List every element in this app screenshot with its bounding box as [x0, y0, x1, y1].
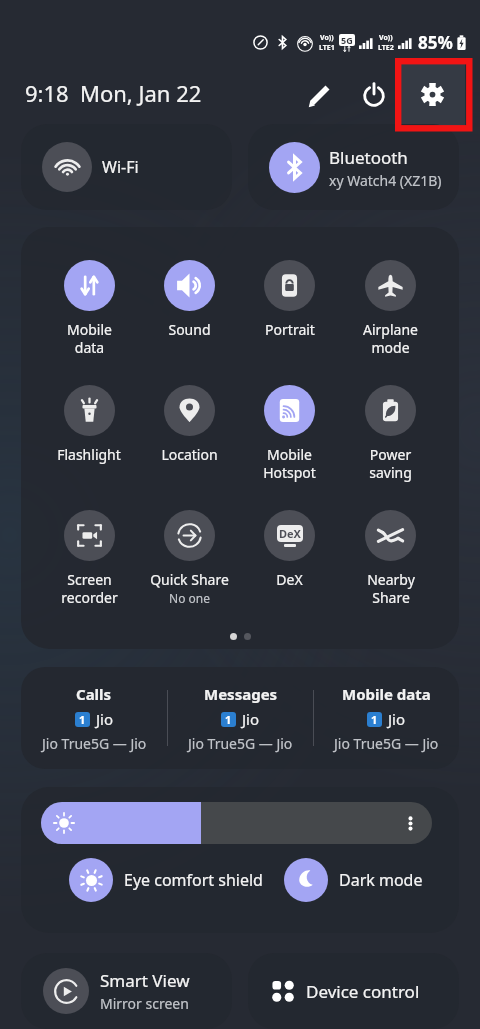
button[interactable]: Dark mode — [284, 850, 439, 910]
button[interactable]: DeX — [239, 510, 340, 589]
staticText: Wi-Fi — [102, 156, 139, 178]
staticText: Smart View — [100, 969, 190, 992]
staticText: 1 — [225, 712, 232, 727]
button[interactable]: Airplane mode — [340, 260, 441, 357]
staticText: 5G — [341, 34, 353, 46]
staticText: DeX — [279, 526, 301, 541]
staticText: Device control — [306, 980, 420, 1003]
staticText: Dark mode — [339, 869, 423, 891]
staticText: Airplane mode — [363, 320, 418, 357]
staticText: 85% — [418, 31, 453, 54]
staticText: Mon, Jan 22 — [80, 78, 202, 108]
staticText: 9:18 — [25, 78, 69, 108]
staticText: Quick Share — [150, 570, 229, 589]
staticText: Sound — [168, 320, 211, 339]
button[interactable]: Calls — [21, 667, 459, 769]
staticText: Power saving — [369, 445, 412, 482]
button[interactable]: Location — [139, 385, 239, 464]
button[interactable]: Power — [352, 73, 396, 117]
staticText: No one — [169, 590, 210, 606]
staticText: LTE2 — [378, 43, 394, 53]
staticText: Messages — [204, 684, 278, 704]
button[interactable]: Device control — [248, 953, 459, 1029]
staticText: Mobile Hotspot — [263, 445, 316, 482]
staticText: Location — [161, 445, 218, 464]
staticText: LTE1 — [319, 43, 335, 53]
staticText: Jio — [242, 709, 260, 729]
button[interactable]: Settings — [400, 62, 465, 127]
button[interactable]: Mobile Hotspot — [239, 385, 340, 482]
button[interactable]: Screen recorder — [39, 510, 139, 607]
button[interactable]: Flashlight — [39, 385, 139, 464]
staticText: Screen recorder — [61, 570, 118, 607]
staticText: Vo)) — [320, 33, 334, 43]
staticText: Vo)) — [379, 33, 393, 43]
button[interactable]: Power saving — [340, 385, 441, 482]
staticText: Nearby Share — [367, 570, 415, 607]
staticText: 1 — [79, 712, 86, 727]
button[interactable]: Portrait — [239, 260, 340, 339]
button[interactable]: Quick Share — [139, 510, 239, 606]
button[interactable]: Bluetooth — [248, 124, 459, 210]
staticText: Portrait — [265, 320, 315, 339]
button[interactable] — [41, 802, 432, 844]
staticText: Mobile data — [67, 320, 112, 357]
staticText: Calls — [76, 684, 112, 704]
staticText: DeX — [276, 570, 303, 589]
button[interactable]: Mobile data — [39, 260, 139, 357]
staticText: xy Watch4 (XZ1B) — [329, 171, 442, 190]
button[interactable]: Sound — [139, 260, 239, 339]
staticText: Jio True5G — Jio — [334, 734, 439, 753]
button[interactable]: Eye comfort shield — [69, 850, 284, 910]
button[interactable]: Smart View — [21, 953, 232, 1029]
staticText: Bluetooth — [329, 146, 408, 169]
staticText: Jio — [96, 709, 114, 729]
button[interactable]: Nearby Share — [340, 510, 441, 607]
button[interactable]: Edit — [298, 73, 342, 117]
staticText: Jio — [388, 709, 406, 729]
staticText: 1 — [371, 712, 378, 727]
staticText: Mobile data — [342, 684, 431, 704]
staticText: Mirror screen — [100, 994, 189, 1013]
staticText: Jio True5G — Jio — [188, 734, 293, 753]
staticText: Jio True5G — Jio — [42, 734, 147, 753]
staticText: Eye comfort shield — [124, 869, 263, 891]
button[interactable]: Wi-Fi — [21, 124, 232, 210]
staticText: Flashlight — [57, 445, 121, 464]
